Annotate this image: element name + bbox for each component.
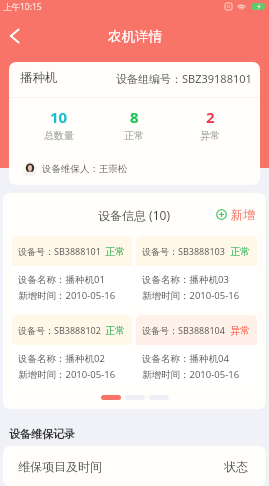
staticText: 设备信息 (10) xyxy=(98,207,171,223)
staticText: 设备维保记录 xyxy=(9,427,75,441)
staticText: 上午10:15 xyxy=(3,1,42,13)
staticText: 农机详情 xyxy=(108,28,162,45)
staticText: 正常 xyxy=(105,324,125,337)
staticText: 正常 xyxy=(124,129,144,142)
staticText: 播种机 xyxy=(20,70,58,86)
staticText: 正常 xyxy=(105,245,125,258)
staticText: 10 xyxy=(50,107,68,127)
staticText: 异常 xyxy=(200,129,220,142)
staticText: 设备名称：播种机04 xyxy=(142,352,229,365)
button[interactable]: 设备号：SB3888104 xyxy=(136,315,257,388)
button[interactable]: 设备号：SB3888102 xyxy=(12,315,132,388)
button[interactable]: 设备号：SB3888103 xyxy=(136,236,257,309)
staticText: 异常 xyxy=(230,324,250,337)
staticText: 设备名称：播种机01 xyxy=(18,273,105,286)
staticText: 正常 xyxy=(230,245,250,258)
staticText: 新增 xyxy=(231,207,255,222)
staticText: 新增时间：2010-05-16 xyxy=(142,368,240,381)
staticText: 设备名称：播种机02 xyxy=(18,352,105,365)
staticText: 维保项目及时间 xyxy=(18,459,102,474)
staticText: 总数量 xyxy=(44,129,74,142)
staticText: 新增时间：2010-05-16 xyxy=(18,368,116,381)
staticText: 新增时间：2010-05-16 xyxy=(142,289,240,302)
staticText: 设备号：SB3888103 xyxy=(142,245,225,257)
button[interactable]: 新增 xyxy=(214,204,257,225)
staticText: 设备维保人：王崇松 xyxy=(42,163,128,175)
button[interactable]: Back xyxy=(0,22,28,50)
staticText: 状态 xyxy=(224,459,248,474)
staticText: 设备组编号：SBZ39188101 xyxy=(116,71,252,86)
staticText: 8 xyxy=(130,107,139,127)
staticText: 设备名称：播种机03 xyxy=(142,273,229,286)
staticText: 设备号：SB3888101 xyxy=(18,245,101,257)
staticText: 设备号：SB3888104 xyxy=(142,324,225,336)
staticText: 设备号：SB3888102 xyxy=(18,324,101,336)
staticText: 2 xyxy=(206,107,215,127)
button[interactable]: 设备号：SB3888101 xyxy=(12,236,132,309)
staticText: 新增时间：2010-05-16 xyxy=(18,289,116,302)
